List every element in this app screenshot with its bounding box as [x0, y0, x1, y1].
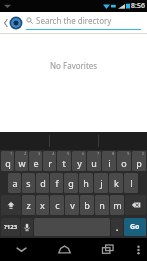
staticText: t — [62, 157, 66, 169]
staticText: e — [33, 157, 39, 169]
button[interactable]: Shift — [1, 195, 21, 215]
button[interactable]: k — [109, 173, 123, 193]
staticText: Search the directory — [36, 15, 112, 26]
button[interactable]: Go — [124, 218, 146, 236]
button[interactable]: x — [36, 195, 49, 215]
button[interactable]: Up — [0, 12, 26, 33]
staticText: 6 — [82, 151, 85, 156]
staticText: o — [121, 157, 127, 169]
staticText: 5 — [67, 151, 70, 156]
staticText: p — [136, 157, 142, 169]
staticText: x — [40, 199, 45, 211]
button[interactable]: Home — [43, 238, 86, 261]
button[interactable]: Period — [111, 218, 123, 236]
button[interactable]: 2 — [15, 151, 28, 171]
button[interactable]: z — [22, 195, 35, 215]
button[interactable]: Backspace — [125, 195, 146, 215]
button[interactable]: Recent apps — [86, 238, 129, 261]
button[interactable]: 8 — [102, 151, 116, 171]
button[interactable]: f — [50, 173, 63, 193]
staticText: i — [108, 157, 111, 169]
button[interactable]: c — [50, 195, 64, 215]
staticText: . — [116, 222, 119, 233]
staticText: v — [70, 199, 75, 211]
staticText: Go — [130, 222, 140, 232]
button[interactable]: 4 — [43, 151, 56, 171]
staticText: b — [84, 199, 90, 211]
staticText: 4 — [52, 151, 55, 156]
staticText: l — [130, 177, 133, 189]
staticText: u — [91, 157, 97, 169]
staticText: j — [100, 177, 103, 189]
button[interactable]: m — [110, 195, 124, 215]
staticText: 2 — [24, 151, 27, 156]
staticText: 1 — [10, 151, 13, 156]
staticText: w — [18, 157, 26, 169]
staticText: h — [83, 177, 89, 189]
button[interactable]: s — [22, 173, 35, 193]
staticText: 0 — [142, 151, 145, 156]
button[interactable]: j — [94, 173, 108, 193]
button[interactable]: More options — [129, 238, 147, 261]
staticText: n — [99, 199, 105, 211]
staticText: ?123 — [4, 223, 18, 231]
staticText: 7 — [97, 151, 100, 156]
staticText: No Favorites — [50, 60, 98, 71]
staticText: 8:56 — [131, 1, 145, 11]
button[interactable]: a — [8, 173, 21, 193]
staticText: a — [12, 177, 18, 189]
staticText: f — [55, 177, 59, 189]
button[interactable]: Search the directory — [26, 15, 141, 30]
staticText: q — [5, 157, 11, 169]
staticText: d — [40, 177, 46, 189]
button[interactable]: n — [95, 195, 109, 215]
staticText: 8 — [112, 151, 115, 156]
staticText: z — [26, 199, 31, 211]
button[interactable]: Voice input — [21, 218, 33, 236]
button[interactable]: b — [80, 195, 94, 215]
staticText: 3 — [38, 151, 41, 156]
staticText: m — [113, 199, 122, 211]
staticText: c — [55, 199, 60, 211]
button[interactable]: g — [64, 173, 78, 193]
staticText: r — [48, 157, 52, 169]
button[interactable]: 1 — [1, 151, 14, 171]
button[interactable]: 9 — [117, 151, 131, 171]
staticText: 9 — [127, 151, 130, 156]
button[interactable]: l — [124, 173, 138, 193]
button[interactable]: v — [65, 195, 79, 215]
button[interactable]: 0 — [132, 151, 146, 171]
button[interactable]: 5 — [57, 151, 71, 171]
button[interactable]: d — [36, 173, 49, 193]
button[interactable]: 7 — [87, 151, 101, 171]
staticText: g — [68, 177, 74, 189]
button[interactable]: 3 — [29, 151, 42, 171]
button[interactable]: Back — [0, 238, 43, 261]
button[interactable]: h — [79, 173, 93, 193]
button[interactable]: Symbols — [1, 218, 20, 236]
staticText: y — [77, 157, 82, 169]
button[interactable]: 6 — [72, 151, 86, 171]
staticText: k — [114, 177, 119, 189]
staticText: s — [26, 177, 31, 189]
